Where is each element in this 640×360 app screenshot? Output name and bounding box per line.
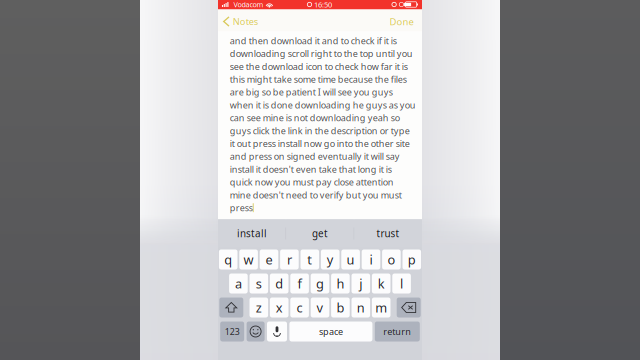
staticText: install (237, 227, 267, 240)
staticText: w (244, 251, 254, 268)
staticText: see the download icon to check how far i… (230, 60, 408, 72)
staticText: m (375, 299, 387, 316)
staticText: 16:50 (314, 0, 332, 10)
staticText: g (316, 275, 324, 292)
button[interactable]: Dictation (267, 321, 287, 341)
button[interactable]: install (218, 219, 286, 247)
button[interactable]: get (286, 219, 354, 247)
staticText: Done (390, 15, 414, 28)
button[interactable]: Shift (219, 297, 243, 317)
staticText: d (275, 275, 283, 292)
button[interactable]: v (311, 297, 329, 317)
staticText: t (307, 251, 312, 268)
button[interactable]: b (331, 297, 350, 317)
staticText: i (369, 251, 372, 268)
staticText: l (400, 275, 403, 292)
staticText: p (408, 251, 416, 268)
button[interactable]: f (290, 273, 309, 293)
staticText: a (235, 275, 242, 292)
staticText: z (256, 299, 262, 316)
staticText: Notes (233, 15, 258, 28)
staticText: e (265, 251, 272, 268)
button[interactable]: trust (354, 219, 422, 247)
button[interactable]: Notes (218, 10, 264, 32)
staticText: x (276, 299, 283, 316)
staticText: trust (377, 227, 400, 240)
staticText: 123 (225, 325, 240, 337)
button[interactable]: z (249, 297, 268, 317)
button[interactable]: o (382, 249, 401, 269)
staticText: r (287, 251, 292, 268)
button[interactable]: return (375, 321, 420, 341)
button[interactable]: g (311, 273, 329, 293)
staticText: and press on signed eventually it will s… (230, 150, 400, 162)
staticText: can see mine is not downloading yeah so (230, 112, 400, 124)
button[interactable]: Done (384, 10, 422, 32)
button[interactable]: x (270, 297, 288, 317)
staticText: get (312, 227, 328, 240)
button[interactable]: a (229, 273, 248, 293)
staticText: downloading scroll right to the top unti… (230, 47, 413, 60)
button[interactable]: u (341, 249, 360, 269)
button[interactable]: r (280, 249, 299, 269)
staticText: k (378, 275, 385, 292)
button[interactable]: t (300, 249, 319, 269)
button[interactable]: space (289, 321, 372, 341)
staticText: h (336, 275, 344, 292)
staticText: press (230, 201, 253, 214)
button[interactable]: j (351, 273, 370, 293)
button[interactable]: i (362, 249, 380, 269)
staticText: this might take some time because the fi… (230, 73, 407, 85)
staticText: q (224, 251, 232, 268)
button[interactable]: w (239, 249, 258, 269)
staticText: return (383, 325, 411, 338)
staticText: u (347, 251, 355, 268)
button[interactable]: n (351, 297, 370, 317)
staticText: install it doesn't even take that long i… (230, 163, 392, 175)
staticText: s (256, 275, 262, 292)
staticText: v (316, 299, 323, 316)
button[interactable]: 123 (220, 321, 244, 341)
button[interactable]: p (402, 249, 421, 269)
button[interactable]: c (290, 297, 309, 317)
staticText: space (319, 325, 343, 338)
staticText: it out press install now go into the oth… (230, 137, 410, 150)
button[interactable]: d (270, 273, 288, 293)
staticText: are big so be patient I will see you guy… (230, 86, 393, 98)
button[interactable]: k (372, 273, 390, 293)
staticText: n (357, 299, 365, 316)
staticText: f (298, 275, 302, 292)
staticText: b (336, 299, 344, 316)
button[interactable]: y (321, 249, 339, 269)
button[interactable]: e (260, 249, 278, 269)
staticText: guys click the link in the description o… (230, 124, 410, 137)
staticText: mine doesn't need to verify but you must (230, 189, 402, 201)
staticText: y (327, 251, 334, 268)
staticText: quick now you must pay close attention (230, 176, 394, 188)
staticText: o (387, 251, 395, 268)
staticText: j (359, 275, 362, 292)
button[interactable]: q (219, 249, 237, 269)
staticText: c (297, 299, 303, 316)
button[interactable]: h (331, 273, 350, 293)
staticText: Vodacom (234, 0, 264, 9)
button[interactable]: Delete (397, 297, 421, 317)
staticText: when it is done downloading he guys as y… (230, 99, 416, 111)
staticText: and then download it and to check if it … (230, 34, 397, 47)
button[interactable]: s (249, 273, 268, 293)
button[interactable]: Emoji (247, 321, 265, 341)
button[interactable]: l (392, 273, 411, 293)
button[interactable]: m (372, 297, 390, 317)
